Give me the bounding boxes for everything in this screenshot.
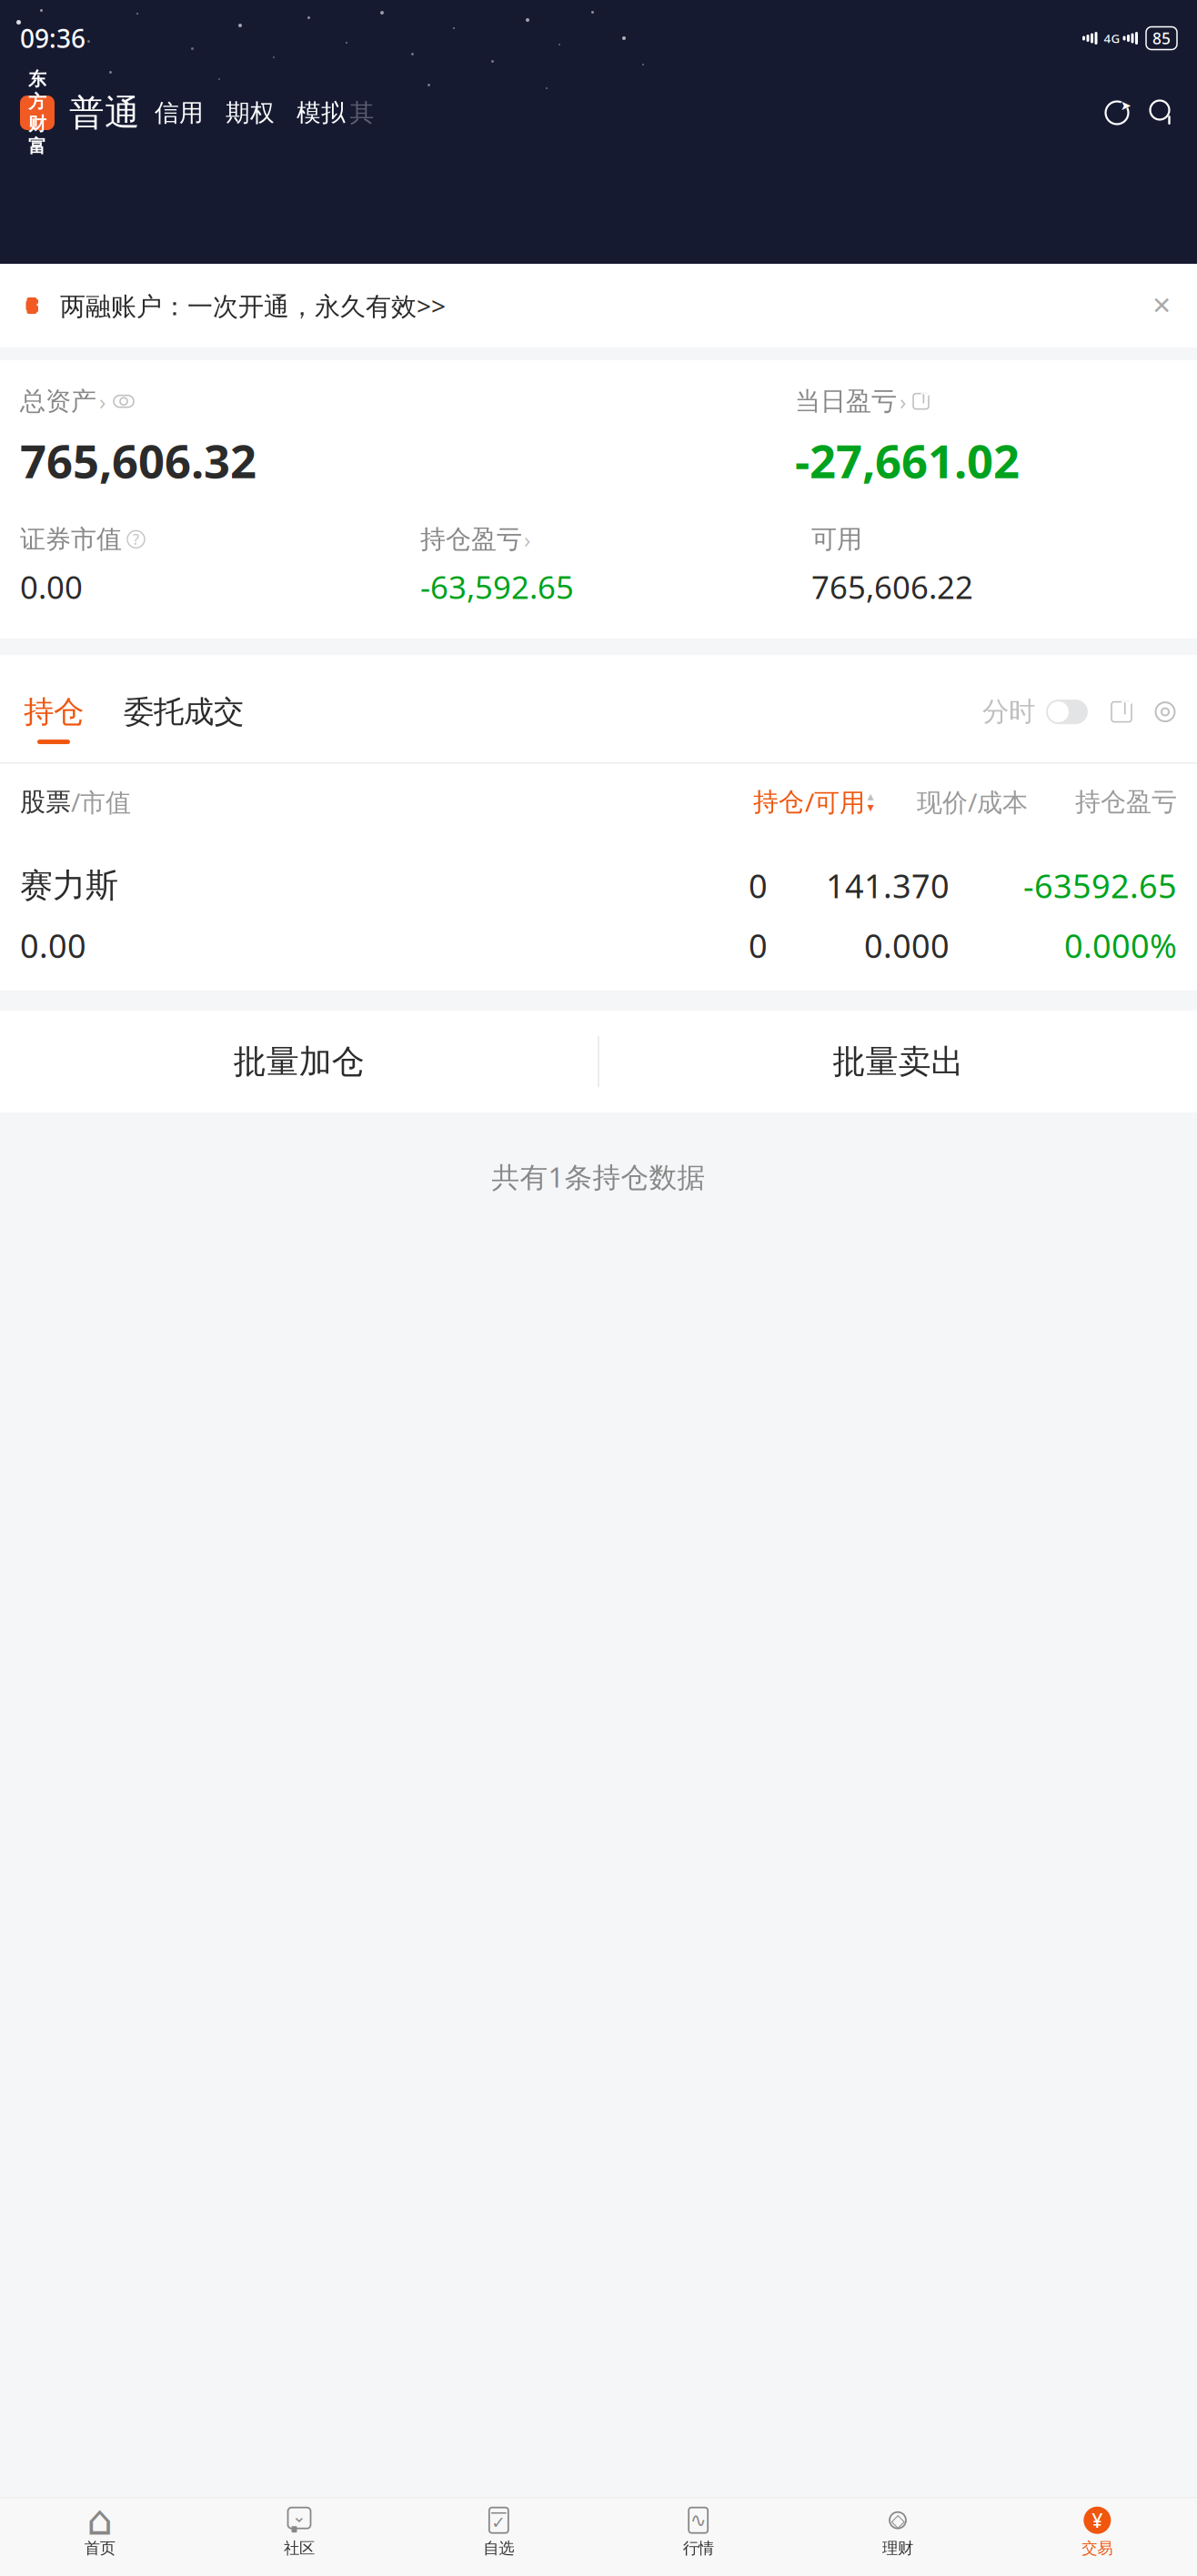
staticText: 共有1条持仓数据: [492, 1158, 705, 1195]
button[interactable]: 设置: [1153, 700, 1177, 737]
staticText: ?: [133, 530, 139, 549]
staticText: -63592.65: [1023, 864, 1177, 907]
button[interactable]: ⌂: [0, 2498, 199, 2563]
button[interactable]: 信用: [144, 98, 215, 128]
button[interactable]: 普通: [55, 91, 144, 134]
staticText: 765,606.22: [811, 566, 973, 608]
button[interactable]: 批量加仓: [0, 1011, 598, 1113]
button[interactable]: 模拟: [286, 98, 357, 128]
staticText: ¥: [1092, 2507, 1103, 2533]
staticText: 批量加仓: [233, 1042, 364, 1082]
staticText: 两融账户：一次开通，永久有效>>: [60, 289, 446, 323]
button[interactable]: 持仓盈亏: [420, 524, 530, 555]
staticText: 交易: [1082, 2538, 1113, 2558]
button[interactable]: 当日盈亏: [795, 386, 930, 417]
staticText: ✕: [1152, 292, 1172, 319]
staticText: ✓: [491, 2513, 506, 2532]
staticText: 当日盈亏: [795, 386, 897, 417]
staticText: 09:36: [20, 21, 85, 55]
staticText: 普通: [69, 91, 140, 134]
staticText: 首页: [84, 2538, 115, 2558]
staticText: 0.000%: [1064, 924, 1177, 967]
staticText: 其: [350, 98, 374, 128]
button[interactable]: 赛力斯: [0, 840, 1197, 991]
button[interactable]: ⌄: [199, 2498, 399, 2563]
staticText: 持仓盈亏: [420, 524, 522, 555]
staticText: ▼: [867, 803, 874, 812]
staticText: -63,592.65: [420, 566, 574, 608]
staticText: ➤: [1120, 98, 1131, 113]
staticText: 模拟: [297, 98, 346, 128]
staticText: 赛力斯: [20, 865, 118, 906]
staticText: 自选: [483, 2538, 514, 2558]
staticText: 可用: [811, 524, 862, 555]
staticText: 信用: [155, 98, 204, 128]
staticText: 持仓盈亏: [1075, 786, 1177, 818]
staticText: /市值: [71, 785, 131, 819]
staticText: ›: [99, 387, 106, 416]
staticText: 85: [1152, 28, 1171, 49]
button[interactable]: 刷新: [1102, 98, 1132, 127]
staticText: 0.000: [864, 924, 950, 967]
staticText: 分时: [982, 695, 1035, 728]
staticText: 141.370: [826, 864, 950, 907]
staticText: -27,661.02: [795, 430, 1020, 491]
staticText: ›: [900, 387, 906, 416]
button[interactable]: 两融账户：一次开通，永久有效>>: [0, 264, 1197, 347]
button[interactable]: ∿: [598, 2498, 798, 2563]
staticText: 批量卖出: [833, 1042, 964, 1082]
button[interactable]: 总资产: [20, 386, 135, 417]
staticText: 股票: [20, 786, 71, 818]
button[interactable]: 分时: [982, 695, 1088, 742]
staticText: 东方: [28, 68, 46, 113]
staticText: 4G: [1104, 30, 1120, 46]
button[interactable]: 期权: [215, 98, 286, 128]
staticText: 0.00: [20, 924, 86, 967]
button[interactable]: 委托成交: [87, 693, 244, 744]
button[interactable]: ✓: [399, 2498, 598, 2563]
button[interactable]: 分享: [1110, 700, 1133, 737]
staticText: /可用: [805, 785, 865, 819]
staticText: 持仓: [753, 786, 804, 818]
staticText: 0: [749, 864, 768, 907]
button[interactable]: ¥: [998, 2498, 1197, 2563]
staticText: 0.00: [20, 566, 83, 608]
button[interactable]: 东方财富: [20, 96, 55, 130]
staticText: 0: [749, 924, 768, 967]
button[interactable]: 批量卖出: [599, 1011, 1197, 1113]
staticText: 行情: [683, 2538, 714, 2558]
button[interactable]: ◇: [798, 2498, 997, 2563]
staticText: ◇: [891, 2510, 905, 2531]
staticText: ▲: [867, 792, 874, 801]
staticText: 765,606.32: [20, 430, 256, 491]
staticText: 理财: [882, 2538, 913, 2558]
staticText: ⌄: [292, 2507, 307, 2526]
staticText: 现价/成本: [917, 785, 1028, 819]
button[interactable]: 持仓: [20, 693, 87, 744]
staticText: ⌂: [87, 2497, 113, 2544]
staticText: 社区: [284, 2538, 315, 2558]
staticText: ›: [524, 525, 530, 554]
staticText: 总资产: [20, 386, 96, 417]
staticText: 期权: [226, 98, 275, 128]
button[interactable]: 关闭: [1146, 290, 1177, 321]
staticText: 财富: [28, 113, 46, 157]
button[interactable]: 持仓: [753, 785, 875, 819]
staticText: 证券市值: [20, 524, 122, 555]
staticText: 持仓: [24, 693, 84, 730]
button[interactable]: 搜索: [1148, 98, 1177, 127]
staticText: 委托成交: [124, 693, 244, 730]
staticText: ∿: [690, 2509, 706, 2531]
